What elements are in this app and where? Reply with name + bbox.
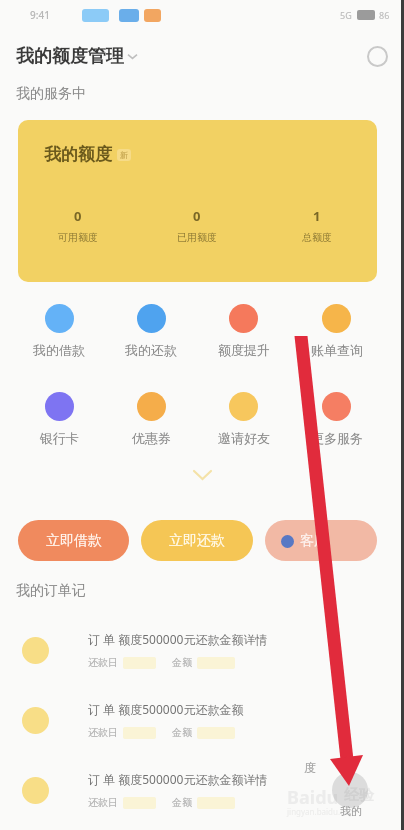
staticText: 还款日 bbox=[88, 796, 118, 809]
button[interactable]: 我的还款 bbox=[105, 304, 197, 358]
button[interactable]: 我的额度 bbox=[18, 120, 377, 282]
staticText: 还款日 bbox=[88, 656, 118, 669]
staticText: 度 bbox=[304, 760, 316, 775]
staticText: Baidu bbox=[287, 785, 339, 810]
staticText: 0 bbox=[193, 207, 201, 225]
staticText: 新 bbox=[120, 150, 128, 160]
staticText: 5G bbox=[340, 9, 352, 21]
staticText: 9:41 bbox=[30, 8, 50, 22]
staticText: 已用额度 bbox=[177, 231, 217, 244]
staticText: 总额度 bbox=[302, 231, 332, 244]
button[interactable]: 客服 bbox=[265, 520, 377, 561]
button[interactable]: 立即还款 bbox=[141, 520, 253, 561]
staticText: 银行卡 bbox=[40, 430, 79, 446]
staticText: 订 单 额度500000元还款金额 bbox=[88, 701, 244, 717]
button[interactable]: 银行卡 bbox=[13, 392, 105, 446]
staticText: 我的还款 bbox=[125, 342, 177, 358]
button[interactable]: Expand bbox=[0, 462, 404, 488]
staticText: 我的 bbox=[340, 804, 362, 818]
staticText: 经验 bbox=[344, 786, 374, 805]
staticText: jingyan.baidu.com bbox=[287, 806, 357, 817]
staticText: 更多服务 bbox=[311, 430, 363, 446]
staticText: 优惠券 bbox=[132, 430, 171, 446]
staticText: 我的额度 bbox=[44, 144, 112, 165]
staticText: 立即借款 bbox=[46, 532, 102, 550]
button[interactable]: 优惠券 bbox=[105, 392, 197, 446]
button[interactable]: 额度提升 bbox=[197, 304, 290, 358]
staticText: 金额 bbox=[172, 726, 192, 739]
staticText: 我的额度管理 bbox=[16, 45, 124, 68]
staticText: 86 bbox=[379, 9, 390, 21]
staticText: 订 单 额度500000元还款金额详情 bbox=[88, 771, 268, 787]
button[interactable]: 订 单 额度500000元还款金额详情 bbox=[22, 755, 388, 825]
staticText: 账单查询 bbox=[311, 342, 363, 358]
staticText: 邀请好友 bbox=[218, 430, 270, 446]
staticText: 金额 bbox=[172, 656, 192, 669]
staticText: 金额 bbox=[172, 796, 192, 809]
staticText: 订 单 额度500000元还款金额详情 bbox=[88, 631, 268, 647]
button[interactable]: 订 单 额度500000元还款金额详情 bbox=[22, 615, 388, 685]
staticText: 立即还款 bbox=[169, 532, 225, 550]
button[interactable]: 我的借款 bbox=[13, 304, 105, 358]
button[interactable]: 账单查询 bbox=[290, 304, 383, 358]
staticText: 0 bbox=[74, 207, 82, 225]
staticText: 可用额度 bbox=[58, 231, 98, 244]
button[interactable]: 更多服务 bbox=[290, 392, 383, 446]
staticText: 1 bbox=[313, 207, 321, 225]
button[interactable]: 订 单 额度500000元还款金额 bbox=[22, 685, 388, 755]
staticText: 还款日 bbox=[88, 726, 118, 739]
button[interactable]: 立即借款 bbox=[18, 520, 129, 561]
staticText: 客服 bbox=[300, 532, 328, 550]
button[interactable]: 邀请好友 bbox=[197, 392, 290, 446]
staticText: 我的借款 bbox=[33, 342, 85, 358]
staticText: 我的订单记 bbox=[16, 582, 86, 600]
button[interactable]: Customer service bbox=[364, 43, 390, 69]
staticText: 额度提升 bbox=[218, 342, 270, 358]
staticText: 我的服务中 bbox=[16, 85, 86, 103]
